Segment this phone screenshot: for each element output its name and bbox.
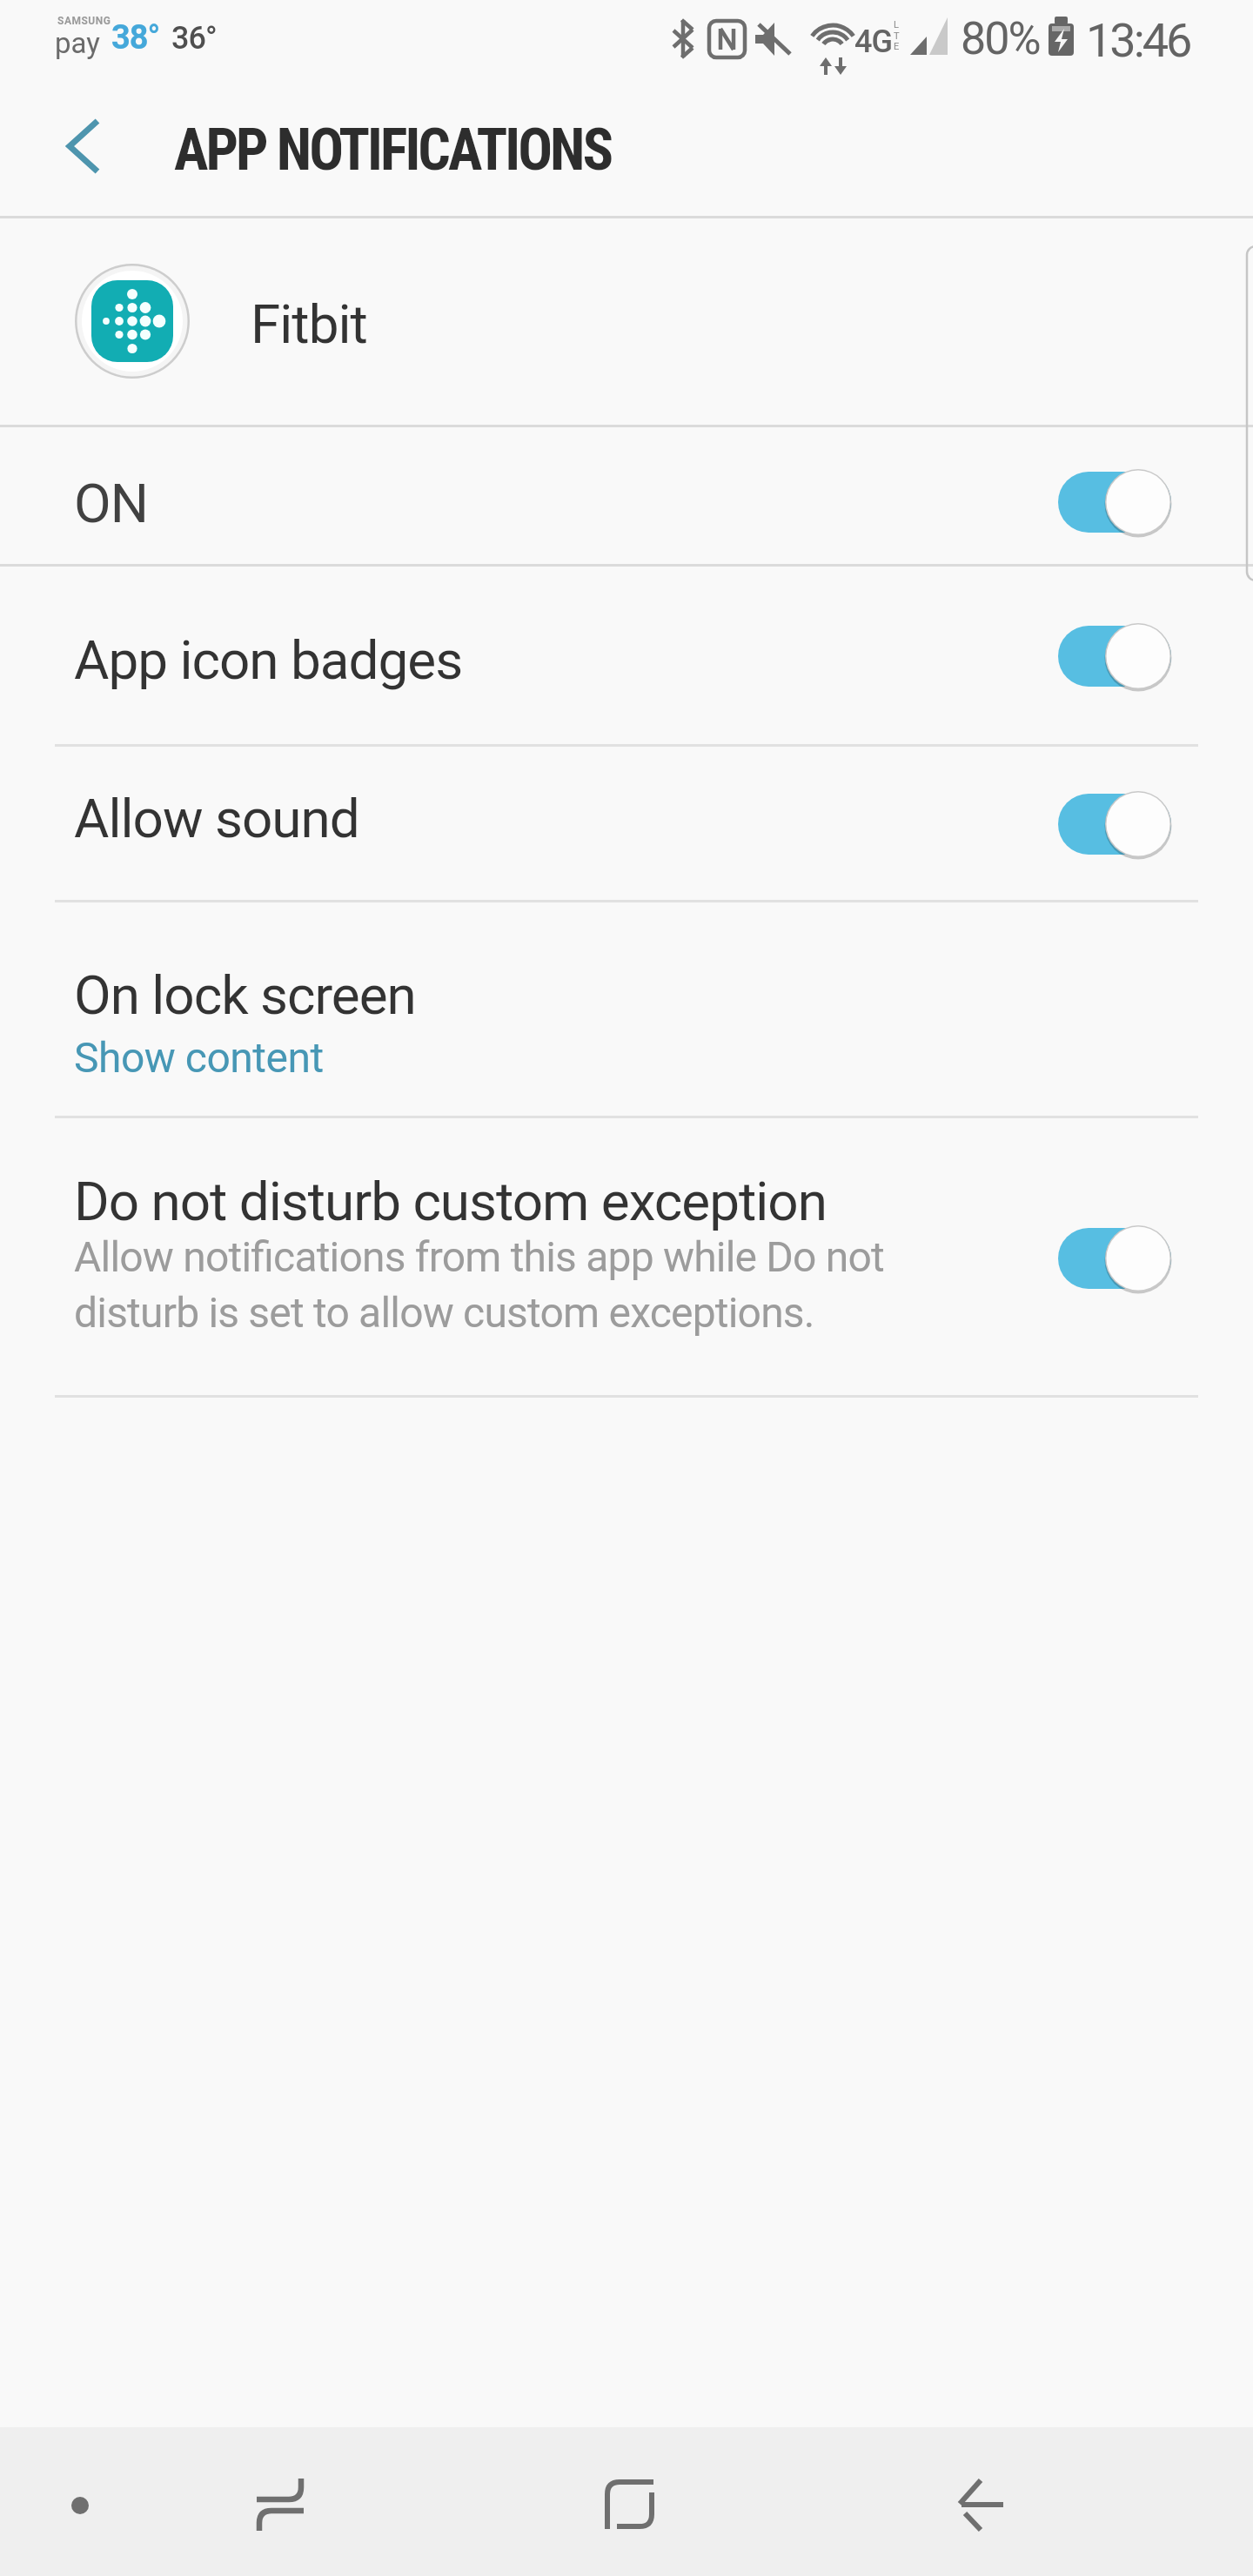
- staticText: 36°: [171, 20, 217, 57]
- button[interactable]: [0, 427, 1253, 564]
- staticText: App icon badges: [74, 628, 463, 692]
- button[interactable]: [0, 1118, 1253, 1395]
- staticText: ON: [74, 472, 148, 535]
- staticText: Allow notifications from this app while …: [74, 1232, 884, 1337]
- staticText: On lock screen: [74, 963, 416, 1027]
- button[interactable]: [0, 747, 1253, 900]
- staticText: APP NOTIFICATIONS: [174, 117, 612, 184]
- staticText: L T E: [894, 19, 900, 51]
- staticText: SAMSUNG: [57, 15, 111, 27]
- button[interactable]: [1058, 468, 1171, 536]
- button[interactable]: [218, 2445, 348, 2559]
- staticText: Allow sound: [74, 787, 359, 850]
- button[interactable]: [566, 2445, 696, 2559]
- button[interactable]: [1058, 790, 1171, 858]
- staticText: pay: [55, 26, 100, 60]
- button[interactable]: [914, 2445, 1044, 2559]
- button[interactable]: [35, 96, 131, 200]
- staticText: Show content: [74, 1033, 324, 1082]
- staticText: 4G: [854, 23, 892, 60]
- staticText: Fitbit: [251, 292, 367, 356]
- button[interactable]: [1058, 1224, 1171, 1292]
- staticText: 38°: [111, 18, 160, 57]
- button[interactable]: [0, 902, 1253, 1116]
- staticText: 13:46: [1086, 13, 1190, 68]
- button[interactable]: [1058, 622, 1171, 690]
- button[interactable]: [0, 218, 1253, 425]
- staticText: Do not disturb custom exception: [74, 1170, 827, 1233]
- staticText: 80%: [961, 12, 1040, 65]
- button[interactable]: [0, 567, 1253, 744]
